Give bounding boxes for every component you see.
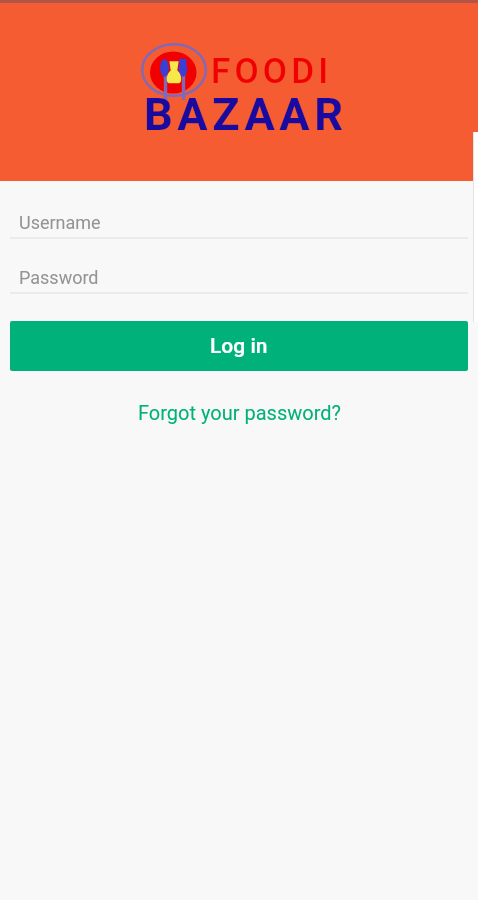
staticText: Password <box>19 267 99 288</box>
other: Foodi Bazaar logo <box>138 40 208 100</box>
button[interactable]: Forgot your password? <box>130 396 349 429</box>
button[interactable]: Log in <box>10 321 468 371</box>
staticText: Log in <box>210 334 268 359</box>
button[interactable]: Password <box>0 239 478 294</box>
staticText: Username <box>19 212 101 233</box>
button[interactable]: Username <box>0 181 478 239</box>
staticText: BAZAAR <box>144 88 348 141</box>
staticText: FOODI <box>211 51 333 92</box>
staticText: Forgot your password? <box>138 401 341 424</box>
